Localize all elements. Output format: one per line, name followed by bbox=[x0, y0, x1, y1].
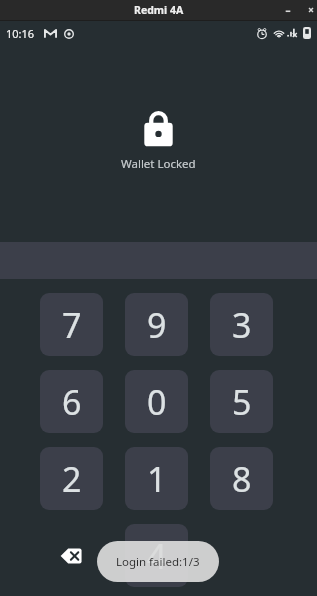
button[interactable]: 9 bbox=[125, 293, 188, 356]
staticText: Wallet Locked bbox=[121, 156, 196, 172]
button[interactable]: 2 bbox=[40, 447, 103, 510]
button[interactable]: Backspace bbox=[59, 544, 83, 568]
button[interactable]: Minimize bbox=[279, 1, 297, 19]
staticText: 5 bbox=[232, 379, 252, 425]
staticText: Redmi 4A bbox=[134, 3, 184, 17]
button[interactable]: 4 bbox=[125, 524, 188, 587]
staticText: 9 bbox=[147, 302, 167, 348]
staticText: 10:16 bbox=[6, 26, 35, 41]
staticText: 0 bbox=[147, 379, 167, 425]
button[interactable]: 1 bbox=[125, 447, 188, 510]
staticText: 3 bbox=[232, 302, 252, 348]
staticText: 4 bbox=[147, 533, 167, 579]
staticText: 6 bbox=[62, 379, 82, 425]
button[interactable]: 8 bbox=[210, 447, 273, 510]
button[interactable]: Close bbox=[302, 1, 317, 19]
staticText: Login failed:1/3 bbox=[116, 554, 200, 570]
staticText: 2 bbox=[62, 456, 82, 502]
button[interactable]: 3 bbox=[210, 293, 273, 356]
button[interactable]: 5 bbox=[210, 370, 273, 433]
button[interactable]: 6 bbox=[40, 370, 103, 433]
staticText: 7 bbox=[62, 302, 82, 348]
staticText: 8 bbox=[232, 456, 252, 502]
button[interactable]: 0 bbox=[125, 370, 188, 433]
button[interactable]: 7 bbox=[40, 293, 103, 356]
staticText: 1 bbox=[147, 456, 167, 502]
